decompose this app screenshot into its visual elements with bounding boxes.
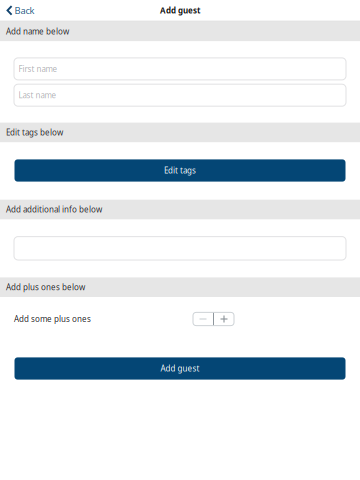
staticText: Add name below — [6, 26, 69, 37]
staticText: Add guest — [160, 5, 200, 16]
button[interactable]: Last name — [14, 84, 346, 106]
staticText: First name — [18, 64, 57, 74]
staticText: Add guest — [160, 363, 199, 374]
button[interactable]: Back — [0, 0, 43, 20]
staticText: Edit tags below — [6, 127, 63, 138]
staticText: Last name — [18, 90, 56, 100]
button[interactable]: Add guest — [14, 357, 345, 380]
staticText: Add additional info below — [6, 204, 102, 215]
button[interactable]: Decrease plus ones — [193, 312, 213, 326]
staticText: Add some plus ones — [14, 314, 91, 324]
button[interactable]: Additional info — [14, 237, 346, 260]
staticText: Edit tags — [164, 165, 196, 176]
button[interactable]: Edit tags — [14, 159, 345, 182]
button[interactable]: First name — [14, 58, 346, 80]
button[interactable]: Increase plus ones — [214, 312, 234, 326]
staticText: Add plus ones below — [6, 282, 85, 292]
staticText: Back — [15, 4, 35, 17]
